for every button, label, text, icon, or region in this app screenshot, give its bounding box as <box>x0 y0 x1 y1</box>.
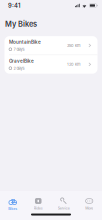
staticText: 350 km <box>67 43 81 48</box>
staticText: More <box>85 206 93 210</box>
staticText: My Bikes <box>5 20 37 29</box>
button[interactable]: Bikes <box>0 197 25 211</box>
button[interactable]: Rides <box>25 197 51 210</box>
staticText: 7 days <box>14 47 25 52</box>
staticText: MountainBike <box>9 39 41 45</box>
staticText: 2 days <box>14 66 25 71</box>
staticText: Bikes <box>8 206 17 211</box>
staticText: GravelBike <box>9 58 34 64</box>
staticText: 9:41 <box>8 2 20 9</box>
staticText: 120 km <box>67 62 81 67</box>
button[interactable]: Service <box>51 197 76 210</box>
staticText: Service <box>58 206 70 210</box>
staticText: Rides <box>34 206 43 210</box>
button[interactable]: More <box>76 197 102 210</box>
button[interactable]: MountainBike <box>4 36 97 55</box>
button[interactable]: GravelBike <box>4 55 97 74</box>
